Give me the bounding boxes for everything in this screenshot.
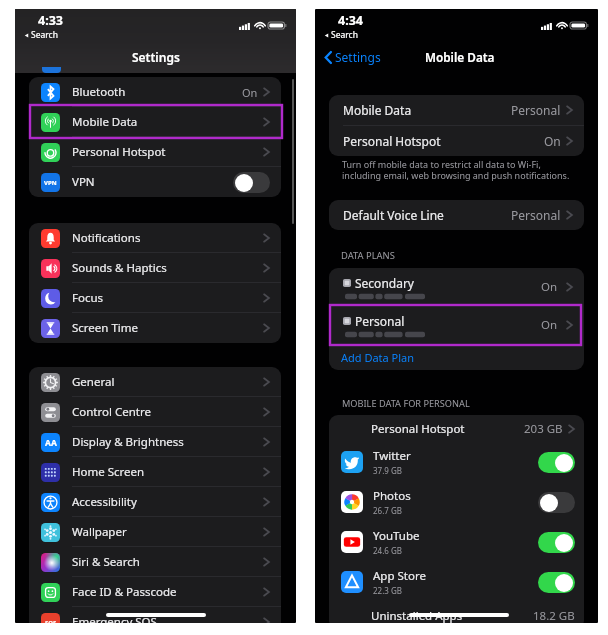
button[interactable]: Bluetooth [29, 77, 281, 107]
staticText: 26.7 GB [373, 505, 402, 516]
button[interactable]: AA [29, 427, 281, 457]
button[interactable]: Photos [329, 482, 584, 522]
staticText: Personal [511, 102, 561, 118]
staticText: Turn off mobile data to restrict all dat… [342, 158, 570, 181]
staticText: Settings [335, 49, 381, 65]
staticText: Accessibility [72, 494, 137, 510]
button[interactable]: Secondary [329, 268, 584, 306]
button[interactable]: Default Voice Line [329, 200, 584, 230]
staticText: 203 GB [524, 421, 563, 437]
staticText: DATA PLANS [341, 249, 395, 262]
staticText: 4:34 [338, 12, 363, 29]
staticText: Sounds & Haptics [72, 260, 167, 276]
button[interactable]: Control Centre [29, 397, 281, 427]
staticText: Personal [511, 207, 561, 223]
staticText: Search [331, 29, 358, 41]
button[interactable]: YouTube [329, 522, 584, 562]
staticText: Siri & Search [72, 554, 140, 570]
button[interactable]: Uninstalled Apps [329, 602, 584, 623]
staticText: 22.3 GB [373, 585, 402, 596]
staticText: Mobile Data [343, 102, 412, 118]
staticText: Screen Time [72, 320, 139, 336]
button[interactable]: Toggle off [538, 492, 575, 513]
button[interactable]: Focus [29, 283, 281, 313]
staticText: SOS [45, 619, 57, 623]
staticText: Add Data Plan [341, 350, 415, 365]
button[interactable]: Personal Hotspot [329, 126, 584, 156]
staticText: Bluetooth [72, 84, 126, 100]
button[interactable]: Twitter [329, 442, 584, 482]
button[interactable]: Wallpaper [29, 517, 281, 547]
staticText: Personal Hotspot [343, 133, 441, 149]
staticText: Photos [373, 488, 411, 504]
staticText: Secondary [355, 275, 414, 291]
staticText: Search [31, 29, 58, 41]
staticText: 37.9 GB [373, 465, 402, 476]
staticText: On [541, 317, 558, 333]
staticText: Default Voice Line [343, 207, 444, 223]
staticText: Control Centre [72, 404, 151, 420]
button[interactable]: Mobile Data [29, 107, 281, 137]
staticText: App Store [373, 568, 426, 584]
staticText: YouTube [373, 528, 420, 544]
staticText: Twitter [373, 448, 411, 464]
staticText: AA [45, 437, 57, 449]
button[interactable]: Toggle off [233, 172, 270, 193]
staticText: Display & Brightness [72, 434, 184, 450]
staticText: On [541, 279, 558, 295]
button[interactable]: General [29, 367, 281, 397]
staticText: On [242, 85, 258, 100]
button[interactable]: Add Data Plan [329, 344, 584, 370]
staticText: 4:33 [38, 12, 63, 29]
button[interactable]: Screen Time [29, 313, 281, 343]
button[interactable]: Settings [325, 49, 381, 65]
staticText: Mobile Data [425, 49, 495, 65]
button[interactable]: Toggle on [538, 532, 575, 553]
staticText: Focus [72, 290, 104, 306]
staticText: 18.2 GB [533, 608, 575, 623]
staticText: On [544, 133, 561, 149]
button[interactable]: Accessibility [29, 487, 281, 517]
staticText: General [72, 374, 115, 390]
staticText: MOBILE DATA FOR PERSONAL [342, 397, 470, 410]
staticText: Uninstalled Apps [371, 608, 463, 623]
button[interactable]: VPN [29, 167, 281, 197]
staticText: Wallpaper [72, 524, 127, 540]
staticText: Emergency SOS [72, 614, 157, 623]
staticText: VPN [72, 174, 95, 190]
staticText: 24.6 GB [373, 545, 402, 556]
button[interactable]: Personal Hotspot [329, 415, 584, 442]
button[interactable]: Mobile Data [329, 95, 584, 125]
staticText: Mobile Data [72, 114, 138, 130]
button[interactable]: Face ID & Passcode [29, 577, 281, 607]
staticText: Settings [132, 49, 180, 65]
button[interactable]: Home Screen [29, 457, 281, 487]
staticText: Personal [355, 313, 405, 329]
button[interactable]: App Store [329, 562, 584, 602]
button[interactable]: SOS [29, 607, 281, 623]
button[interactable]: Sounds & Haptics [29, 253, 281, 283]
staticText: Personal Hotspot [72, 144, 166, 160]
staticText: Personal Hotspot [371, 421, 465, 437]
button[interactable]: Personal Hotspot [29, 137, 281, 167]
button[interactable]: Toggle on [538, 572, 575, 593]
button[interactable]: Siri & Search [29, 547, 281, 577]
staticText: Notifications [72, 230, 141, 246]
staticText: Home Screen [72, 464, 145, 480]
button[interactable]: Personal [329, 306, 584, 344]
staticText: VPN [44, 179, 57, 187]
button[interactable]: Notifications [29, 223, 281, 253]
button[interactable]: Toggle on [538, 452, 575, 473]
staticText: Face ID & Passcode [72, 584, 177, 600]
